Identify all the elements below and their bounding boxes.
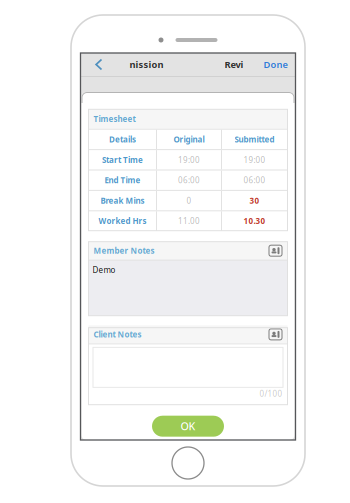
staticText: 30: [249, 195, 259, 206]
button[interactable]: Done: [260, 53, 290, 76]
staticText: OK: [180, 419, 195, 433]
button[interactable]: OK: [152, 416, 224, 437]
staticText: Submitted: [234, 134, 274, 145]
staticText: Demo: [92, 265, 115, 275]
button[interactable]: Back: [80, 53, 117, 76]
staticText: 0: [186, 195, 191, 206]
staticText: 0/100: [259, 388, 282, 399]
staticText: Member Notes: [93, 245, 154, 256]
staticText: Client Notes: [93, 329, 141, 340]
staticText: 19:00: [243, 154, 265, 165]
staticText: Done: [263, 58, 287, 71]
staticText: Original: [173, 134, 204, 145]
staticText: Break Mins: [100, 195, 144, 206]
staticText: 10.30: [243, 216, 265, 226]
staticText: 19:00: [178, 154, 200, 165]
staticText: 06:00: [243, 175, 265, 185]
staticText: Worked Hrs: [98, 216, 146, 226]
staticText: Start Time: [102, 154, 143, 165]
staticText: nission: [129, 58, 163, 71]
staticText: Revi: [224, 58, 243, 71]
button[interactable]: Client signature: [268, 328, 282, 340]
button[interactable]: Member signature: [268, 245, 282, 257]
staticText: Timesheet: [93, 114, 135, 124]
staticText: End Time: [104, 175, 140, 185]
staticText: 11.00: [178, 216, 200, 226]
staticText: Details: [109, 134, 136, 145]
staticText: 06:00: [178, 175, 200, 185]
